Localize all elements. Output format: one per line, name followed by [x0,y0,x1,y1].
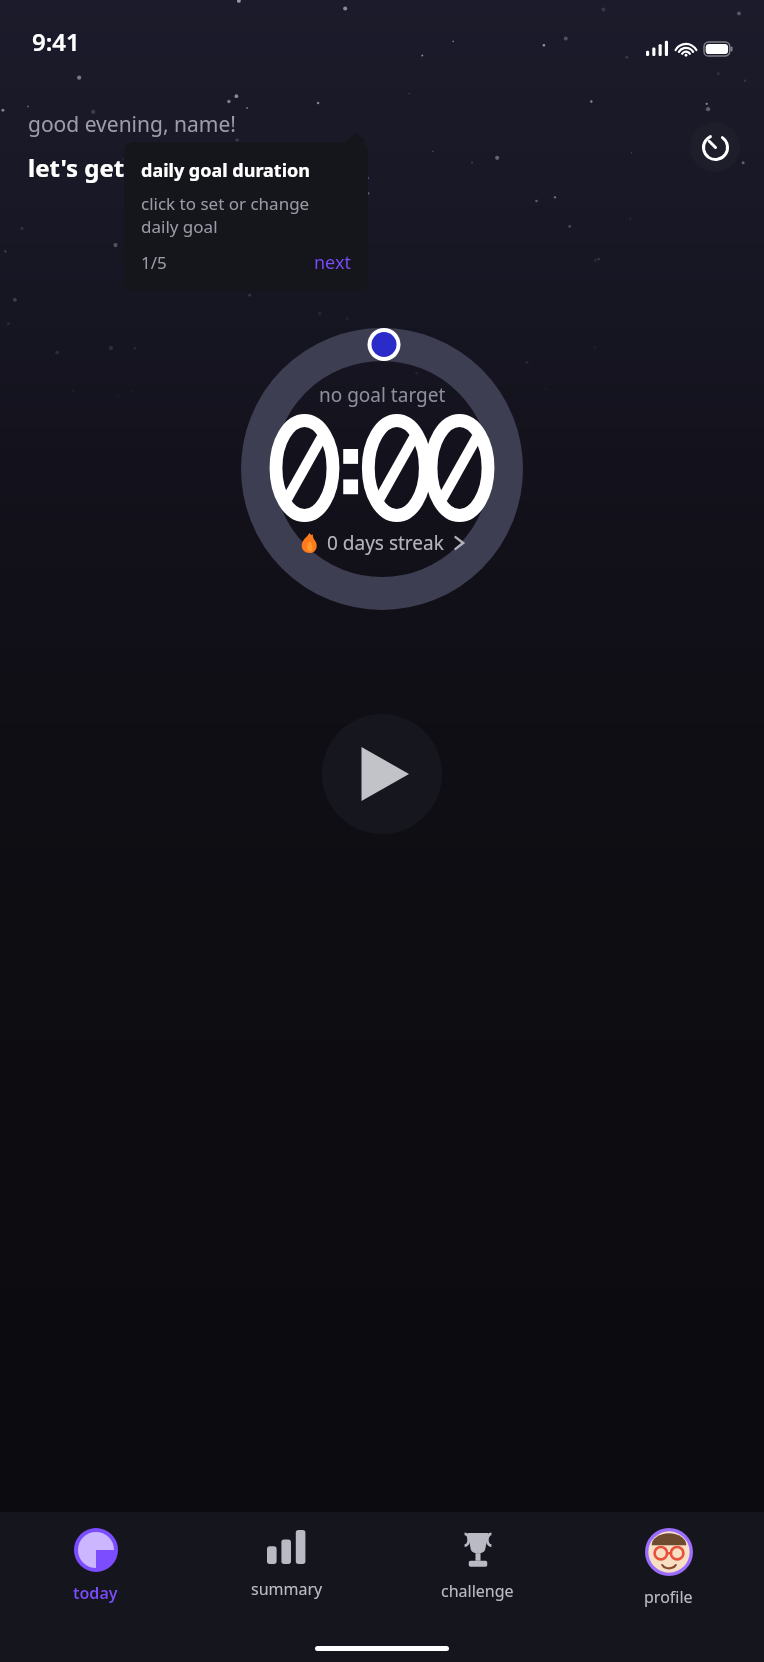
staticText: no goal target [319,382,446,408]
staticText: 1/5 [141,251,167,274]
staticText: good evening, name! [28,110,236,139]
button[interactable]: next [314,250,351,275]
button[interactable]: summary [191,1512,382,1622]
staticText: next [314,250,351,275]
button[interactable]: Start timer [322,714,442,834]
staticText: today [73,1582,118,1604]
staticText: click to set or change daily goal [141,192,351,238]
button[interactable]: profile [573,1512,764,1622]
staticText: 0 days streak [327,530,444,556]
staticText: challenge [441,1580,514,1602]
staticText: 9:41 [32,25,80,58]
button[interactable]: daily goal duration [124,142,368,291]
button[interactable]: challenge [382,1512,573,1622]
button[interactable]: no goal target [267,382,497,556]
button[interactable]: today [0,1512,191,1622]
button[interactable]: 0 days streak [299,530,466,556]
staticText: let's get productive today [28,151,335,184]
staticText: daily goal duration [141,158,311,183]
staticText: profile [644,1586,693,1608]
staticText: summary [251,1578,323,1600]
button[interactable]: Timer settings [690,122,740,172]
